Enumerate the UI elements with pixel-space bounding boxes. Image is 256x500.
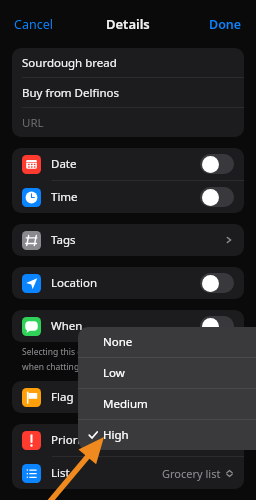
staticText: When	[51, 318, 83, 334]
staticText: Sourdough bread	[22, 55, 117, 71]
staticText: High	[103, 427, 129, 443]
staticText: Priority	[51, 432, 91, 448]
staticText: Details	[106, 15, 150, 33]
button[interactable]: URL	[12, 108, 244, 137]
staticText: Date	[51, 156, 77, 172]
staticText: URL	[22, 115, 44, 131]
staticText: Done	[209, 16, 242, 33]
button[interactable]: Date	[12, 148, 244, 180]
button[interactable]: Tags	[12, 224, 244, 256]
button[interactable]: Priority	[12, 424, 244, 456]
button[interactable]: Time	[12, 181, 244, 213]
staticText: Low	[103, 365, 125, 381]
staticText: Cancel	[14, 16, 53, 33]
button[interactable]: Cancel	[8, 12, 59, 37]
staticText: List	[51, 465, 70, 481]
button[interactable]: Buy from Delfinos	[12, 78, 244, 107]
button[interactable]: High	[78, 420, 256, 450]
button[interactable]: Flag	[12, 381, 244, 413]
button[interactable]: Time toggle	[200, 187, 234, 207]
button[interactable]: None	[78, 327, 256, 357]
button[interactable]: List	[12, 457, 244, 489]
staticText: Flag	[51, 389, 74, 405]
button[interactable]: Medium	[78, 389, 256, 419]
staticText: None	[103, 334, 133, 350]
button[interactable]: Low	[78, 358, 256, 388]
button[interactable]: Date toggle	[200, 154, 234, 174]
staticText: Tags	[51, 232, 76, 248]
staticText: Time	[51, 189, 78, 205]
button[interactable]: Location	[12, 267, 244, 299]
staticText: when chatting with the person.	[22, 361, 147, 373]
button[interactable]: Done	[203, 12, 248, 37]
button[interactable]: Location toggle	[200, 273, 234, 293]
button[interactable]: When toggle	[200, 316, 234, 336]
button[interactable]: Sourdough bread	[12, 48, 244, 77]
staticText: Buy from Delfinos	[22, 85, 119, 101]
staticText: Grocery list	[162, 466, 221, 481]
staticText: Medium	[103, 396, 148, 412]
button[interactable]: When	[12, 310, 244, 342]
staticText: Location	[51, 275, 98, 291]
staticText: Selecting this option notifies you	[22, 346, 153, 358]
